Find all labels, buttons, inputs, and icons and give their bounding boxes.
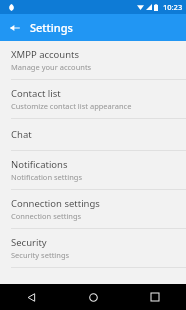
staticText: Notification settings: [11, 172, 82, 182]
staticText: Manage your accounts: [11, 62, 92, 72]
staticText: Notifications: [11, 158, 68, 171]
staticText: Settings: [30, 20, 73, 35]
staticText: 10:23: [163, 2, 183, 12]
button[interactable]: Contact list: [0, 80, 186, 118]
staticText: Connection settings: [11, 197, 100, 210]
button[interactable]: Connection settings: [0, 190, 186, 228]
button[interactable]: Recent apps: [124, 284, 186, 310]
staticText: Contact list: [11, 87, 61, 100]
staticText: XMPP accounts: [11, 48, 80, 61]
staticText: Chat: [11, 128, 32, 141]
button[interactable]: Chat: [0, 119, 186, 150]
button[interactable]: Security: [0, 229, 186, 267]
button[interactable]: Back: [4, 17, 26, 39]
button[interactable]: Home: [62, 284, 124, 310]
staticText: Connection settings: [11, 211, 82, 221]
button[interactable]: Notifications: [0, 151, 186, 189]
staticText: Customize contact list appearance: [11, 101, 132, 111]
staticText: Security: [11, 236, 47, 249]
button[interactable]: XMPP accounts: [0, 41, 186, 79]
button[interactable]: Back: [0, 284, 62, 310]
staticText: Security settings: [11, 250, 70, 260]
